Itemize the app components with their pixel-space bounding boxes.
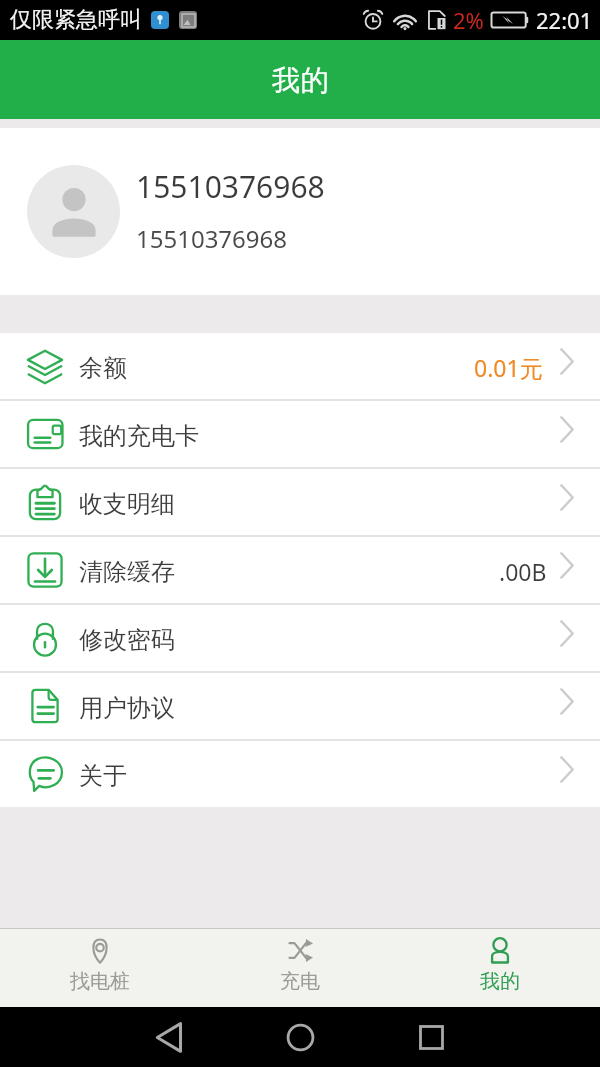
- button[interactable]: 修改密码: [0, 605, 600, 671]
- staticText: 充电: [280, 969, 320, 994]
- button[interactable]: 余额: [0, 333, 600, 399]
- staticText: 22:01: [536, 5, 593, 35]
- button[interactable]: 充电: [200, 929, 400, 1007]
- staticText: .00B: [499, 556, 547, 587]
- staticText: 收支明细: [79, 489, 175, 519]
- button[interactable]: 用户协议: [0, 673, 600, 739]
- button[interactable]: 找电桩: [0, 929, 200, 1007]
- staticText: 2%: [453, 5, 484, 35]
- staticText: 清除缓存: [79, 557, 175, 587]
- staticText: 余额: [79, 353, 127, 383]
- staticText: 0.01元: [474, 352, 543, 383]
- button[interactable]: 我的充电卡: [0, 401, 600, 467]
- staticText: 用户协议: [79, 693, 175, 723]
- button[interactable]: 关于: [0, 741, 600, 807]
- staticText: 仅限紧急呼叫: [10, 6, 142, 34]
- button[interactable]: Home: [284, 1007, 316, 1067]
- button[interactable]: 15510376968: [0, 128, 600, 295]
- button[interactable]: 我的: [400, 929, 600, 1007]
- button[interactable]: Back: [54, 1007, 284, 1067]
- button[interactable]: 清除缓存: [0, 537, 600, 603]
- staticText: 15510376968: [136, 166, 325, 207]
- staticText: 我的: [480, 969, 520, 994]
- staticText: 修改密码: [79, 625, 175, 655]
- button[interactable]: 收支明细: [0, 469, 600, 535]
- staticText: 我的: [272, 63, 329, 99]
- staticText: 15510376968: [136, 222, 288, 255]
- staticText: 找电桩: [70, 969, 130, 994]
- staticText: 我的充电卡: [79, 421, 199, 451]
- staticText: 关于: [79, 761, 127, 791]
- button[interactable]: Recents: [316, 1007, 546, 1067]
